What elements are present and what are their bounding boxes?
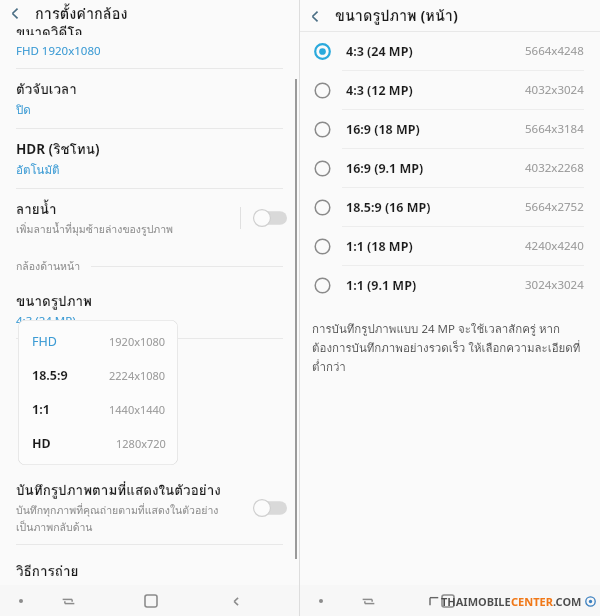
staticText: 18.5:9 (32, 367, 68, 384)
staticText: ตัวจับเวลา (16, 78, 77, 99)
button[interactable]: FHD (18, 324, 178, 358)
button[interactable]: Toggle (253, 499, 287, 517)
staticText: กล้องด้านหน้า (16, 258, 81, 275)
staticText: 4240x4240 (525, 238, 584, 254)
button[interactable]: ลายน้ำ (0, 189, 299, 247)
staticText: 1920x1080 (109, 334, 166, 349)
button[interactable]: 16:9 (18 MP) (300, 110, 600, 148)
button[interactable]: Toggle (253, 209, 287, 227)
staticText: ต่ำกว่า (312, 358, 346, 376)
staticText: ขนาดวิดีโอ (16, 21, 83, 35)
staticText: ขนาดรูปภาพ (16, 290, 93, 311)
staticText: FHD (32, 333, 57, 350)
staticText: ขนาดรูปภาพ (หน้า) (335, 4, 458, 27)
staticText: THAIMOBILE (441, 594, 511, 609)
button[interactable]: ขนาดวิดีโอ (0, 27, 299, 68)
button[interactable]: Dot (308, 588, 334, 614)
button[interactable]: Switch (355, 588, 381, 614)
staticText: 4:3 (24 MP) (16, 313, 76, 329)
staticText: 4032x3024 (525, 82, 584, 98)
button[interactable]: 1:1 (9.1 MP) (300, 266, 600, 304)
staticText: 1440x1440 (109, 402, 166, 417)
staticText: บันทึกทุกภาพที่คุณถ่ายตามที่แสดงในตัวอย่… (16, 502, 243, 519)
button[interactable]: 16:9 (9.1 MP) (300, 149, 600, 187)
button[interactable]: Back (223, 588, 249, 614)
staticText: 2224x1080 (109, 368, 166, 383)
staticText: HD (32, 435, 51, 452)
button[interactable]: Dot (8, 588, 34, 614)
button[interactable]: Recents (138, 588, 164, 614)
staticText: 1280x720 (116, 436, 166, 451)
button[interactable]: 4:3 (24 MP) (300, 32, 600, 70)
staticText: 4032x2268 (525, 160, 584, 176)
staticText: 16:9 (18 MP) (346, 121, 420, 138)
staticText: เป็นภาพกลับด้าน (16, 519, 93, 536)
button[interactable]: 1:1 (18 MP) (300, 227, 600, 265)
button[interactable]: 4:3 (12 MP) (300, 71, 600, 109)
staticText: การตั้งค่ากล้อง (35, 2, 128, 25)
staticText: อัตโนมัติ (16, 161, 60, 179)
staticText: .COM (553, 594, 582, 609)
button[interactable]: วิธีการถ่าย (0, 556, 299, 584)
button[interactable]: 18.5:9 (18, 358, 178, 392)
staticText: 18.5:9 (16 MP) (346, 199, 431, 216)
staticText: บันทึกรูปภาพตามที่แสดงในตัวอย่าง (16, 479, 221, 500)
button[interactable]: Switch (55, 588, 81, 614)
staticText: วิธีการถ่าย (16, 560, 79, 581)
staticText: เพิ่มลายน้ำที่มุมซ้ายล่างของรูปภาพ (16, 221, 174, 238)
staticText: CENTER (511, 594, 553, 609)
button[interactable]: Recents (435, 588, 461, 614)
staticText: 5664x2752 (525, 199, 584, 215)
staticText: ลายน้ำ (16, 198, 57, 219)
button[interactable]: ตัวจับเวลา (0, 69, 299, 128)
staticText: 4:3 (24 MP) (346, 43, 413, 60)
staticText: 3024x3024 (525, 277, 584, 293)
staticText: 1:1 (9.1 MP) (346, 277, 417, 294)
button[interactable]: 18.5:9 (16 MP) (300, 188, 600, 226)
staticText: 5664x3184 (525, 121, 584, 137)
staticText: ปิด (16, 101, 31, 119)
staticText: 1:1 (18 MP) (346, 238, 413, 255)
button[interactable]: HDR (ริชโทน) (0, 129, 299, 188)
staticText: 1:1 (32, 401, 50, 418)
button[interactable]: Back (300, 1, 330, 31)
staticText: HDR (ริชโทน) (16, 138, 100, 159)
staticText: 16:9 (9.1 MP) (346, 160, 424, 177)
staticText: 5664x4248 (525, 43, 584, 59)
button[interactable]: ขนาดรูปภาพ (0, 281, 299, 338)
staticText: FHD 1920x1080 (16, 43, 101, 59)
staticText: 4:3 (12 MP) (346, 82, 413, 99)
button[interactable]: บันทึกรูปภาพตามที่แสดงในตัวอย่าง (0, 473, 299, 544)
staticText: การบันทึกรูปภาพแบบ 24 MP จะใช้เวลาสักครู… (312, 320, 560, 338)
button[interactable]: Back (0, 0, 30, 27)
staticText: ต้องการบันทึกภาพอย่างรวดเร็ว ให้เลือกควา… (312, 339, 581, 357)
button[interactable]: 1:1 (18, 392, 178, 426)
button[interactable]: HD (18, 426, 178, 460)
